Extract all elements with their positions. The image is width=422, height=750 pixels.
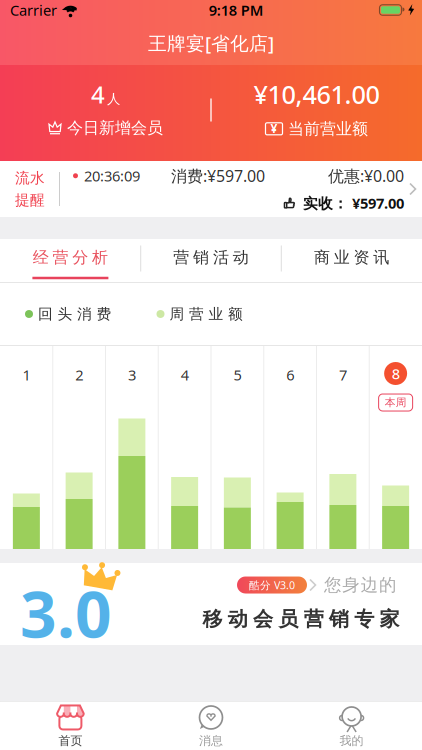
staticText: ¥ [270, 120, 277, 136]
staticText: 析 [92, 248, 108, 267]
staticText: 王牌宴[省化店] [148, 31, 274, 55]
staticText: 20:36:09 [84, 166, 140, 185]
staticText: 额 [228, 305, 243, 323]
button[interactable]: 流水 [0, 161, 422, 217]
staticText: 活 [213, 248, 229, 267]
staticText: 提醒 [15, 191, 45, 209]
staticText: 您 [324, 574, 341, 596]
staticText: 动 [228, 607, 248, 631]
staticText: 营 [52, 248, 68, 267]
staticText: 的 [379, 574, 396, 596]
staticText: 业 [334, 248, 350, 267]
staticText: 经 [33, 248, 49, 267]
staticText: 商 [314, 248, 330, 267]
staticText: 营 [304, 607, 324, 631]
staticText: 家 [380, 607, 400, 631]
staticText: 5 [233, 365, 241, 384]
staticText: 7 [339, 365, 347, 384]
staticText: 流水 [15, 169, 45, 187]
staticText: 6 [286, 365, 294, 384]
staticText: 1 [22, 365, 30, 384]
staticText: 今日新增会员 [67, 118, 163, 138]
staticText: 3.0 [20, 570, 112, 655]
staticText: 实收： ¥597.00 [303, 193, 404, 213]
staticText: 身 [342, 574, 359, 596]
staticText: ¥10,461.00 [253, 77, 379, 111]
staticText: 9:18 PM [209, 0, 264, 20]
button[interactable]: 3.0 [0, 563, 422, 645]
staticText: 营 [173, 248, 189, 267]
staticText: 边 [361, 574, 378, 596]
button[interactable]: 消息 [141, 702, 281, 750]
staticText: 销 [329, 607, 349, 631]
button[interactable]: 我的 [281, 702, 422, 750]
staticText: 消 [77, 305, 92, 323]
staticText: Carrier [10, 0, 57, 20]
staticText: 我的 [340, 733, 364, 748]
staticText: 4 [181, 365, 189, 384]
staticText: 分 [72, 248, 88, 267]
staticText: 2 [75, 365, 83, 384]
staticText: 头 [57, 305, 72, 323]
staticText: 首页 [58, 733, 82, 748]
staticText: 资 [353, 248, 369, 267]
staticText: 本周 [385, 396, 407, 409]
staticText: 当前营业额 [288, 119, 368, 139]
staticText: 优惠:¥0.00 [328, 165, 404, 186]
staticText: 会 [253, 607, 273, 631]
staticText: 消费:¥597.00 [171, 165, 265, 186]
staticText: 业 [208, 305, 223, 323]
staticText: 讯 [373, 248, 389, 267]
staticText: 8 [392, 364, 400, 383]
button[interactable]: 营 [141, 239, 281, 282]
staticText: 动 [233, 248, 249, 267]
staticText: 周 [169, 305, 184, 323]
button[interactable]: 商 [281, 239, 422, 282]
staticText: 人 [107, 91, 120, 107]
staticText: 销 [193, 248, 209, 267]
button[interactable]: 经 [0, 239, 141, 282]
staticText: 4 [91, 78, 105, 110]
staticText: 3 [128, 365, 136, 384]
button[interactable]: 首页 [0, 702, 141, 750]
staticText: 营 [189, 305, 204, 323]
staticText: 消息 [199, 733, 223, 748]
staticText: 移 [202, 607, 222, 631]
staticText: 回 [38, 305, 53, 323]
staticText: 专 [354, 607, 374, 631]
staticText: 员 [278, 607, 298, 631]
staticText: 酷分 V3.0 [249, 578, 295, 592]
staticText: 费 [96, 305, 111, 323]
